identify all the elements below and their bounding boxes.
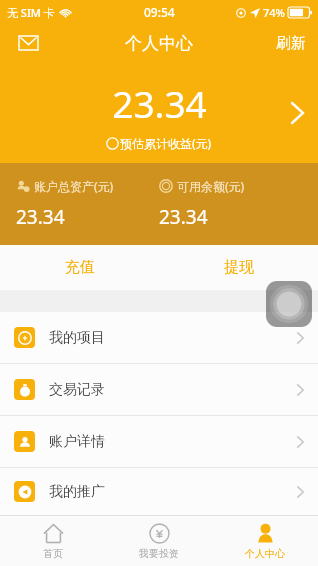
staticText: 可用余额(元) (177, 178, 245, 194)
staticText: 提现 (224, 258, 254, 277)
staticText: 预估累计收益(元) (120, 135, 212, 151)
button[interactable]: Messages (10, 25, 46, 61)
staticText: 23.34 (16, 204, 65, 230)
button[interactable]: 个人中心 (212, 516, 318, 566)
button[interactable]: 账户详情 (0, 416, 318, 468)
staticText: 账户总资产(元) (34, 178, 114, 194)
staticText: 账户详情 (49, 433, 105, 451)
button[interactable]: 首页 (0, 516, 106, 566)
button[interactable]: 提现 (159, 245, 318, 290)
staticText: 我要投资 (139, 547, 179, 560)
staticText: 23.34 (159, 204, 208, 230)
staticText: 我的项目 (49, 329, 105, 347)
button[interactable]: 23.34 (0, 62, 318, 163)
staticText: 个人中心 (245, 547, 285, 560)
button[interactable]: 交易记录 (0, 364, 318, 416)
button[interactable]: 可用余额(元) (159, 163, 318, 245)
staticText: 我的推广 (49, 483, 105, 501)
button[interactable]: 我的推广 (0, 468, 318, 515)
staticText: 充值 (65, 258, 95, 277)
staticText: 23.34 (112, 78, 207, 128)
button[interactable]: 充值 (0, 245, 159, 290)
staticText: 无 SIM 卡 (7, 5, 55, 20)
button[interactable]: 我要投资 (106, 516, 212, 566)
staticText: 个人中心 (125, 33, 193, 54)
staticText: 74% (263, 5, 285, 20)
staticText: 09:54 (144, 4, 175, 20)
button[interactable]: 账户总资产(元) (16, 163, 159, 245)
button[interactable]: 我的项目 (0, 312, 318, 364)
button[interactable]: 刷新 (264, 26, 318, 61)
staticText: 刷新 (276, 34, 306, 53)
button[interactable]: Assistive touch (266, 281, 312, 327)
staticText: 首页 (43, 547, 63, 560)
staticText: 交易记录 (49, 381, 105, 399)
